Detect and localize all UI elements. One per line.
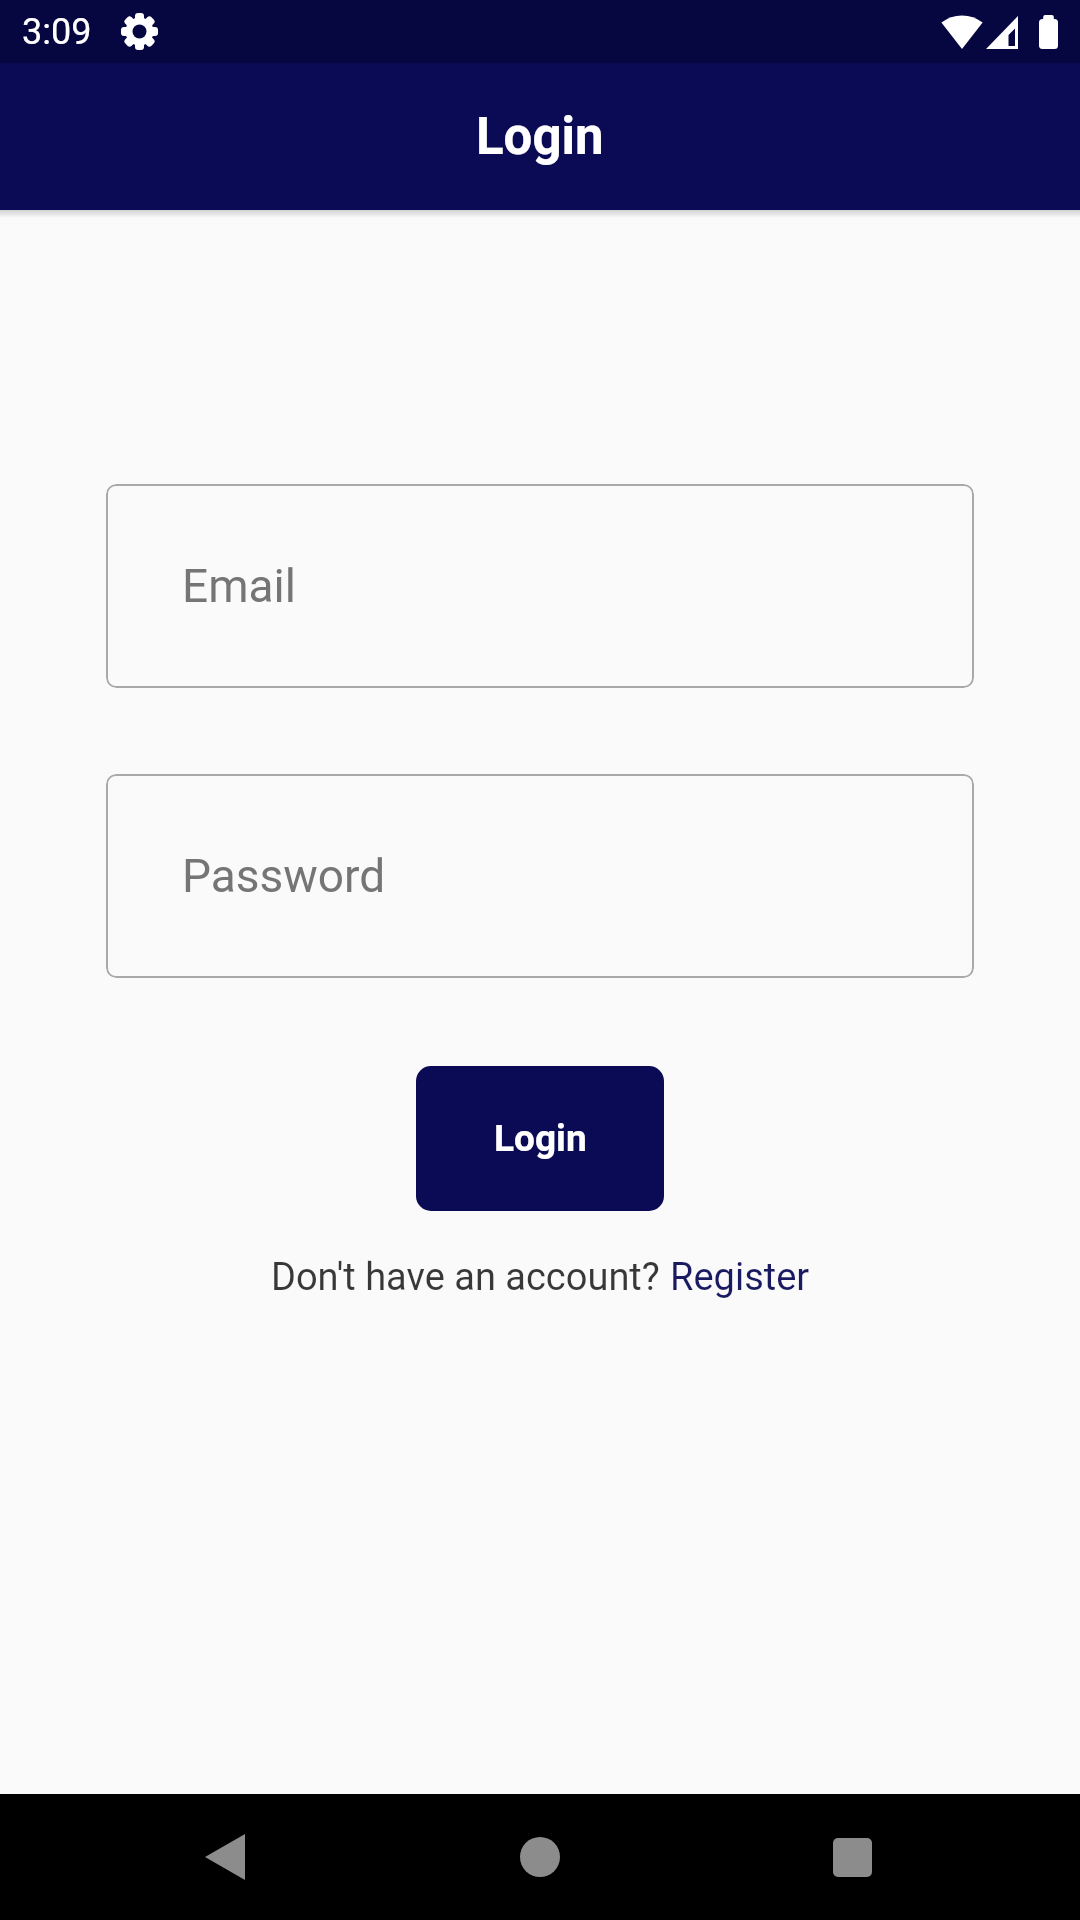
staticText: Don't have an account? bbox=[271, 1255, 670, 1300]
staticText: Login bbox=[494, 1117, 587, 1160]
staticText: 3:09 bbox=[22, 11, 92, 53]
button[interactable] bbox=[812, 1817, 892, 1897]
button[interactable]: Password bbox=[106, 774, 974, 978]
staticText: Login bbox=[476, 107, 604, 167]
staticText: Password bbox=[182, 849, 386, 903]
button[interactable]: Login bbox=[416, 1066, 664, 1211]
button[interactable] bbox=[185, 1817, 265, 1897]
button[interactable]: Email bbox=[106, 484, 974, 688]
button[interactable]: Register bbox=[670, 1255, 810, 1300]
button[interactable] bbox=[500, 1817, 580, 1897]
staticText: Email bbox=[182, 559, 296, 613]
